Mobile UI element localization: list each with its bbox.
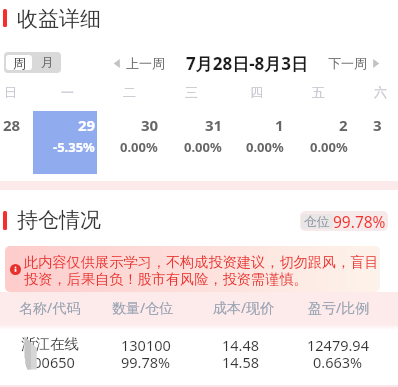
button[interactable]: 仓位 <box>300 211 388 231</box>
staticText: 3 <box>373 115 382 135</box>
staticText: 日 <box>4 84 17 100</box>
staticText: 0.00% <box>310 138 348 156</box>
staticText: 30 <box>141 115 159 135</box>
staticText: 持仓情况 <box>17 207 101 233</box>
button[interactable] <box>33 111 97 174</box>
staticText: 成本/现价 <box>213 298 275 317</box>
staticText: 六 <box>374 84 387 100</box>
staticText: 1 <box>275 115 284 135</box>
button[interactable]: 月 <box>34 52 61 72</box>
staticText: 31 <box>205 115 223 135</box>
staticText: 130100 <box>121 335 171 355</box>
staticText: 浙江在线 <box>21 335 79 353</box>
button[interactable]: Previous week <box>113 54 165 72</box>
button[interactable]: 下一周 <box>328 54 380 72</box>
staticText: 二 <box>123 84 136 100</box>
staticText: 四 <box>250 84 263 100</box>
staticText: -5.35% <box>53 138 95 156</box>
staticText: 一 <box>61 84 74 100</box>
staticText: 月 <box>41 54 54 70</box>
staticText: 28 <box>3 115 21 135</box>
staticText: 收益详细 <box>17 6 101 32</box>
staticText: 此内容仅供展示学习，不构成投资建议，切勿跟风，盲目投资，后果自负！股市有风险，投… <box>24 253 380 288</box>
staticText: 14.48 <box>222 335 260 355</box>
staticText: 五 <box>312 84 325 100</box>
button[interactable]: 周 <box>6 55 32 70</box>
staticText: 0.00% <box>120 138 158 156</box>
staticText: 99.78% <box>333 211 386 231</box>
staticText: 周 <box>13 55 26 70</box>
staticText: 下一周 <box>328 55 367 71</box>
staticText: 0.00% <box>246 138 284 156</box>
other: Previous week <box>113 59 121 68</box>
staticText: 仓位 <box>304 214 330 229</box>
staticText: 盈亏/比例 <box>308 298 370 317</box>
staticText: 0.00% <box>184 138 222 156</box>
staticText: 数量/仓位 <box>112 298 174 317</box>
staticText: 14.58 <box>222 352 260 372</box>
staticText: 0.663% <box>313 352 363 372</box>
staticText: 99.78% <box>121 352 171 372</box>
other: Next week <box>372 59 380 68</box>
staticText: 7月28日-8月3日 <box>186 52 309 75</box>
staticText: 三 <box>185 84 198 100</box>
staticText: 上一周 <box>126 55 165 71</box>
staticText: 2 <box>339 115 348 135</box>
staticText: 名称/代码 <box>19 298 81 317</box>
button[interactable]: 浙江在线 <box>0 330 398 387</box>
staticText: 29 <box>78 115 96 135</box>
staticText: 12479.94 <box>307 335 369 355</box>
staticText: 000650 <box>25 352 75 372</box>
